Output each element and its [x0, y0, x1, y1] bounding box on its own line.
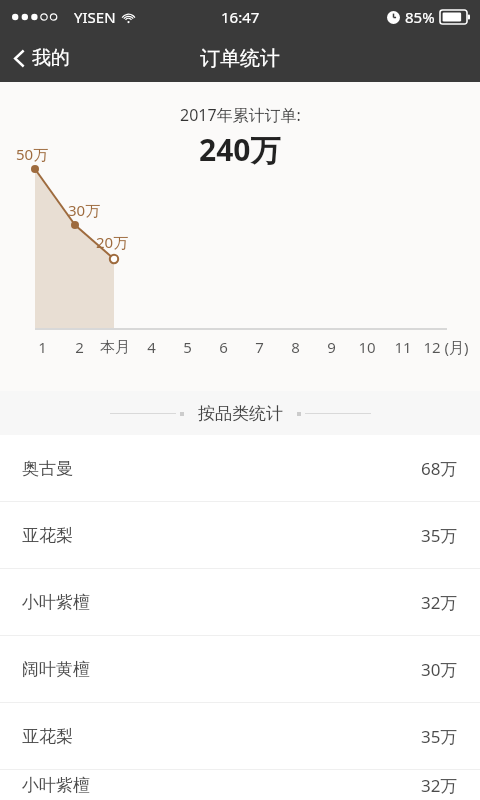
staticText: 小叶紫檀: [22, 775, 90, 796]
staticText: 订单统计: [200, 46, 280, 71]
button[interactable]: 亚花梨: [0, 502, 480, 568]
staticText: 50万: [16, 144, 49, 164]
button[interactable]: 奥古曼: [0, 435, 480, 501]
staticText: 小叶紫檀: [22, 592, 90, 613]
staticText: 30万: [421, 658, 458, 681]
staticText: 240万: [199, 129, 281, 170]
staticText: 11: [394, 337, 412, 357]
button[interactable]: 小叶紫檀: [0, 569, 480, 635]
staticText: 12 (月): [423, 337, 469, 357]
staticText: 2017年累计订单:: [180, 104, 301, 126]
staticText: 4: [147, 337, 156, 357]
staticText: 亚花梨: [22, 525, 73, 546]
staticText: 30万: [68, 200, 101, 220]
staticText: 阔叶黄檀: [22, 659, 90, 680]
button[interactable]: 亚花梨: [0, 703, 480, 769]
button[interactable]: 我的: [0, 34, 84, 82]
staticText: 20万: [96, 232, 129, 252]
staticText: 32万: [421, 774, 458, 797]
staticText: 8: [291, 337, 300, 357]
staticText: 6: [219, 337, 228, 357]
staticText: 7: [255, 337, 264, 357]
staticText: 1: [38, 337, 47, 357]
staticText: 5: [183, 337, 192, 357]
staticText: 35万: [421, 524, 458, 547]
staticText: 10: [358, 337, 376, 357]
staticText: 16:47: [221, 7, 260, 27]
button[interactable]: 小叶紫檀: [0, 770, 480, 800]
staticText: 9: [327, 337, 336, 357]
staticText: YISEN: [74, 7, 116, 27]
staticText: 奥古曼: [22, 458, 73, 479]
staticText: 我的: [32, 46, 70, 70]
staticText: 亚花梨: [22, 726, 73, 747]
staticText: 35万: [421, 725, 458, 748]
staticText: 32万: [421, 591, 458, 614]
staticText: 本月: [100, 338, 130, 357]
staticText: 85%: [405, 7, 435, 27]
staticText: 按品类统计: [198, 403, 283, 424]
button[interactable]: 阔叶黄檀: [0, 636, 480, 702]
staticText: 68万: [421, 457, 458, 480]
staticText: 2: [75, 337, 84, 357]
